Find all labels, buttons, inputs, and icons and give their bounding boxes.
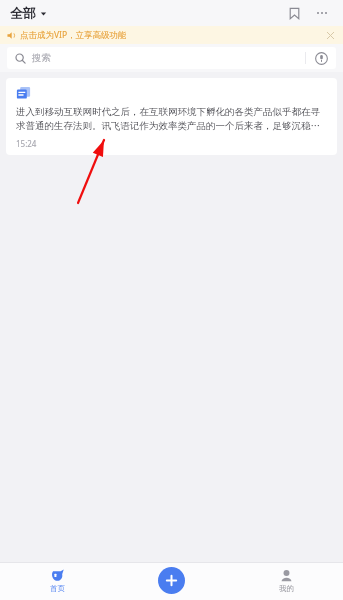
staticText: 全部 xyxy=(10,5,36,21)
staticText: 首页 xyxy=(50,584,65,593)
button[interactable]: 点击成为VIP，立享高级功能 xyxy=(0,26,343,44)
button[interactable]: 进入到移动互联网时代之后，在互联网环境下孵化的各类产品似乎都在寻求普通的生存法则… xyxy=(6,78,337,155)
button[interactable]: More options xyxy=(309,0,335,26)
button[interactable]: Close banner xyxy=(323,28,337,42)
button[interactable]: 我的 xyxy=(229,562,343,600)
button[interactable]: New note xyxy=(158,567,185,594)
staticText: 进入到移动互联网时代之后，在互联网环境下孵化的各类产品似乎都在寻求普通的生存法则… xyxy=(16,106,327,132)
staticText: 15:24 xyxy=(16,138,37,149)
button[interactable]: Bookmarks xyxy=(281,0,307,26)
staticText: 搜索 xyxy=(32,52,51,64)
staticText: 我的 xyxy=(279,584,294,593)
button[interactable]: Voice search xyxy=(306,47,336,69)
staticText: 点击成为VIP，立享高级功能 xyxy=(20,29,127,41)
button[interactable]: 全部 xyxy=(10,5,47,21)
button[interactable]: 搜索 xyxy=(7,47,336,69)
button[interactable]: 首页 xyxy=(0,562,115,600)
